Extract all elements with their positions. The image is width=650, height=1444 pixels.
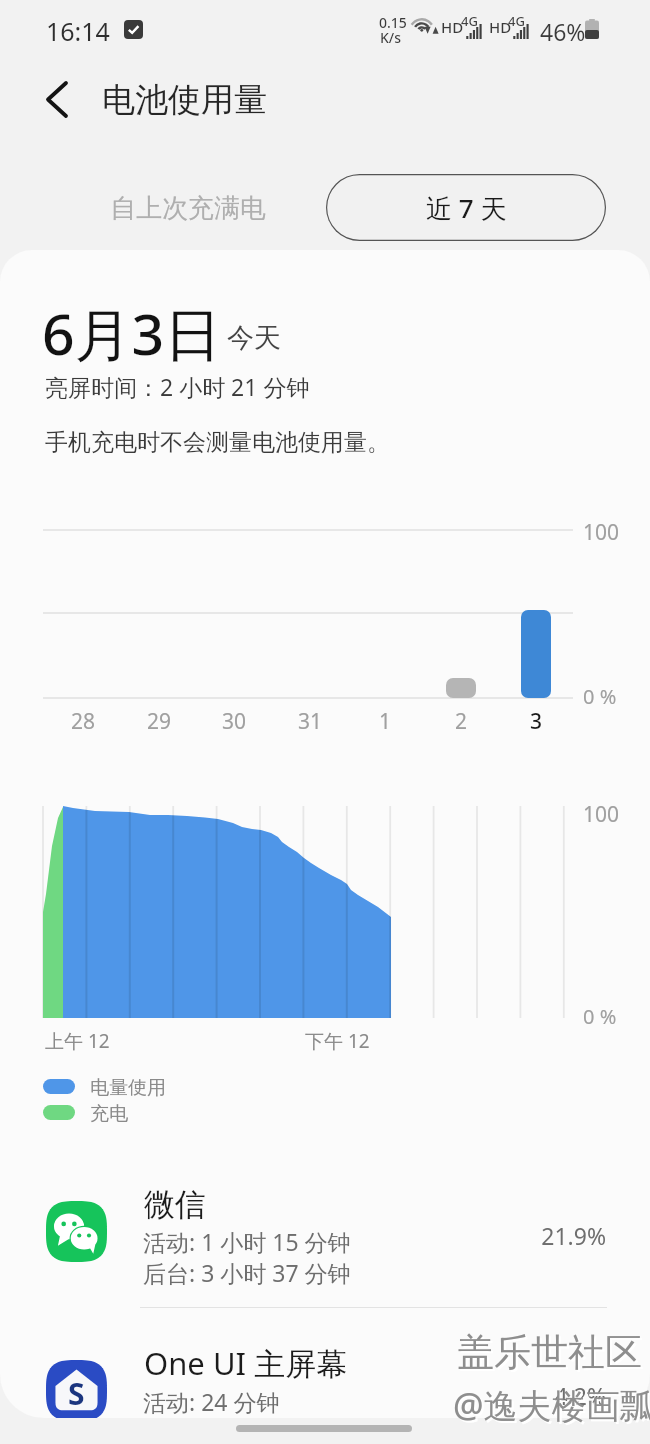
staticText: 28	[61, 707, 105, 736]
staticText: 6月3日	[42, 294, 222, 372]
staticText: 充电	[90, 1102, 128, 1126]
staticText: 46%	[540, 16, 586, 47]
staticText: 自上次充满电	[110, 192, 266, 225]
button[interactable]: 微信	[0, 1150, 650, 1290]
staticText: 电池使用量	[102, 79, 267, 121]
staticText: 亮屏时间：2 小时 21 分钟	[45, 371, 310, 402]
staticText: 1	[363, 707, 407, 736]
staticText: 活动: 1 小时 15 分钟	[143, 1226, 351, 1257]
staticText: 2	[439, 707, 483, 736]
staticText: 3	[514, 707, 558, 736]
staticText: 微信	[144, 1185, 206, 1224]
staticText: 4G	[508, 12, 525, 30]
staticText: 4.2%	[460, 1380, 606, 1411]
staticText: One UI 主屏幕	[144, 1342, 348, 1384]
staticText: 21.9%	[460, 1220, 606, 1251]
staticText: 100	[583, 800, 620, 829]
button[interactable]: Back	[28, 70, 86, 128]
staticText: @逸夫楼画瓢	[455, 1384, 650, 1430]
staticText: 今天	[227, 321, 281, 355]
staticText: 下午 12	[305, 1028, 370, 1054]
staticText: 盖乐世社区	[457, 1329, 642, 1376]
staticText: 100	[583, 518, 620, 547]
staticText: K/s	[380, 28, 402, 47]
staticText: 0.15	[379, 13, 407, 32]
staticText: HD	[489, 17, 512, 37]
staticText: S	[68, 1373, 85, 1414]
staticText: 16:14	[46, 14, 110, 48]
staticText: 0 %	[583, 1003, 617, 1030]
staticText: 电量使用	[90, 1076, 166, 1100]
staticText: 活动: 24 分钟	[143, 1386, 280, 1417]
staticText: 上午 12	[45, 1028, 110, 1054]
staticText: 31	[288, 707, 332, 736]
staticText: 近 7 天	[426, 190, 507, 226]
button[interactable]: 自上次充满电	[86, 175, 290, 241]
staticText: 盖乐世社区	[459, 1331, 644, 1378]
staticText: @逸夫楼画瓢	[453, 1382, 650, 1428]
button[interactable]: 近 7 天	[326, 174, 606, 241]
staticText: 29	[137, 707, 181, 736]
staticText: HD	[441, 17, 464, 37]
staticText: 0 %	[583, 683, 617, 710]
staticText: 手机充电时不会测量电池使用量。	[45, 428, 390, 457]
staticText: 后台: 3 小时 37 分钟	[143, 1257, 351, 1288]
button[interactable]: S	[0, 1312, 650, 1418]
staticText: 4G	[461, 12, 478, 30]
staticText: 30	[212, 707, 256, 736]
